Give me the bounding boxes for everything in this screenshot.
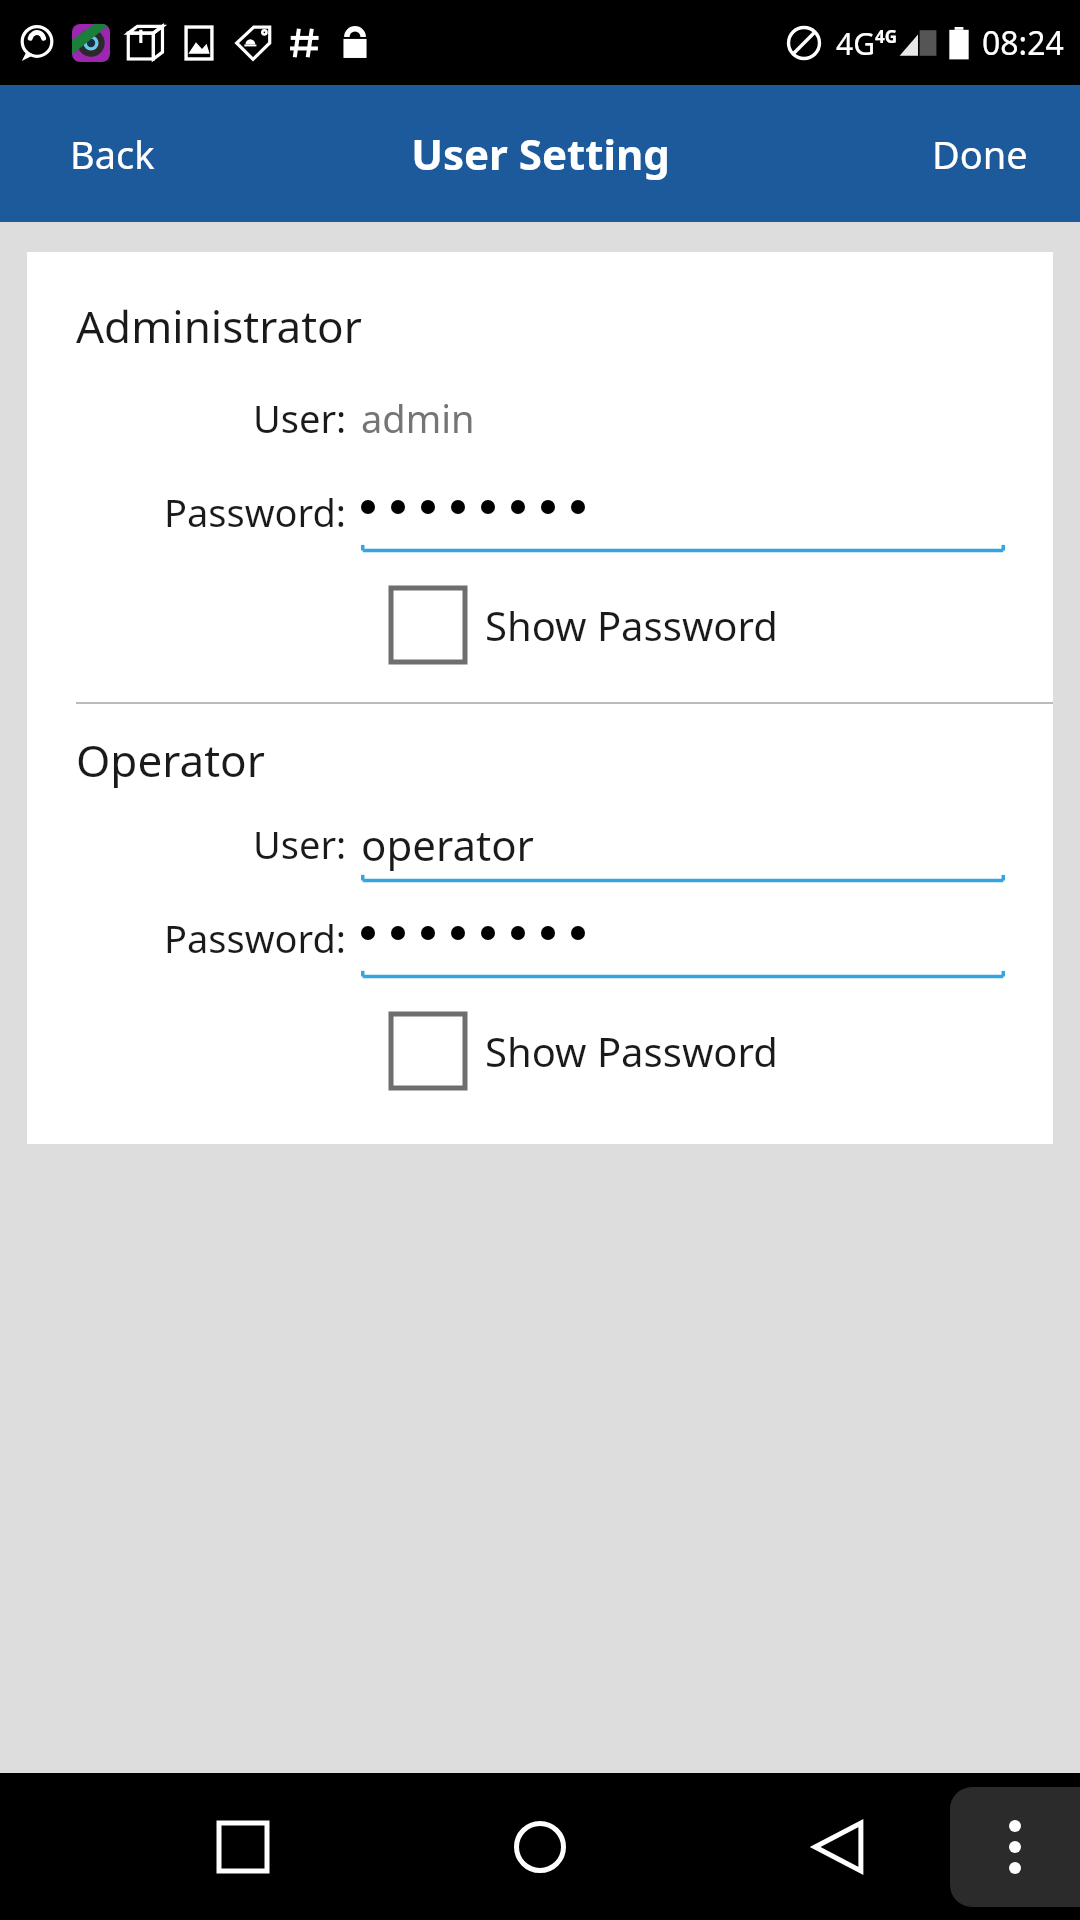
staticText: operator [361,816,534,873]
staticText: Password: [164,912,347,964]
staticText: User: [253,818,347,870]
staticText: 4G [875,25,898,48]
staticText: Show Password [485,1024,778,1078]
staticText: Show Password [485,598,778,652]
button[interactable]: Done [908,112,1080,196]
button[interactable]: Show Password [387,1010,778,1092]
staticText: admin [361,392,475,444]
button[interactable] [361,896,1005,980]
button[interactable]: More options [950,1787,1080,1907]
staticText: User: [253,392,347,444]
staticText: 4G [836,23,875,64]
button[interactable]: Home [485,1792,595,1902]
button[interactable]: admin [361,378,1005,458]
button[interactable]: Back [783,1792,893,1902]
button[interactable]: Back [0,112,179,196]
button[interactable]: operator [361,804,1005,884]
button[interactable]: Show Password [387,584,778,666]
staticText: 08:24 [982,21,1064,65]
staticText: Operator [76,730,265,790]
button[interactable]: Recent apps [188,1792,298,1902]
staticText: User Setting [411,125,670,182]
staticText: Password: [164,486,347,538]
staticText: Back [70,128,155,180]
staticText: Done [932,128,1028,180]
staticText: Administrator [76,296,362,356]
button[interactable] [361,470,1005,554]
